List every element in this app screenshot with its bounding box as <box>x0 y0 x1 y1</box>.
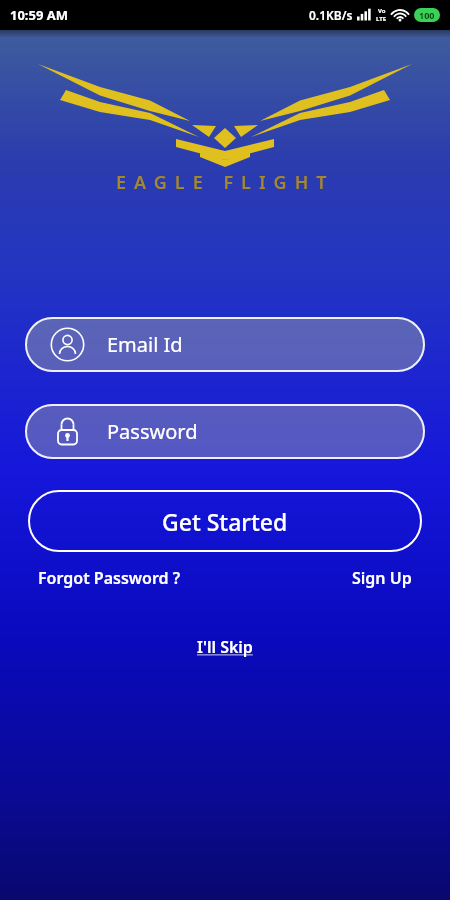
staticText: Sign Up <box>352 567 412 589</box>
button[interactable]: Email Id <box>25 317 425 372</box>
staticText: Password <box>107 418 198 445</box>
button[interactable]: Get Started <box>28 490 422 552</box>
button[interactable]: Sign Up <box>352 567 412 589</box>
staticText: Email Id <box>107 331 183 358</box>
staticText: 0.1KB/s <box>309 7 353 23</box>
button[interactable]: I'll Skip <box>197 636 253 658</box>
staticText: Vo <box>378 7 386 15</box>
staticText: 10:59 AM <box>10 6 69 24</box>
button[interactable]: Forgot Password ? <box>38 567 181 589</box>
staticText: LTE <box>376 15 387 23</box>
button[interactable]: Password <box>25 404 425 459</box>
staticText: Get Started <box>162 506 288 537</box>
staticText: I'll Skip <box>197 636 253 658</box>
staticText: 100 <box>419 9 435 21</box>
staticText: EAGLE FLIGHT <box>116 170 335 195</box>
staticText: Forgot Password ? <box>38 567 181 589</box>
